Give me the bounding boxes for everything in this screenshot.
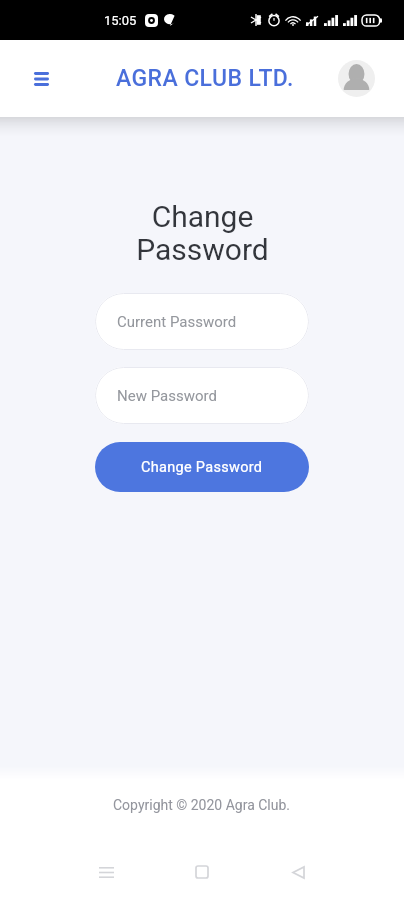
- button[interactable]: New Password: [95, 367, 309, 424]
- staticText: 15:05: [104, 13, 137, 28]
- button[interactable]: Home: [178, 848, 226, 896]
- staticText: Change Password: [136, 199, 269, 267]
- button[interactable]: Recent apps: [82, 848, 130, 896]
- button[interactable]: Change Password: [95, 442, 309, 492]
- button[interactable]: Current Password: [95, 293, 309, 350]
- staticText: Change Password: [141, 459, 263, 476]
- staticText: Current Password: [117, 313, 237, 331]
- button[interactable]: Back: [274, 848, 322, 896]
- staticText: New Password: [117, 387, 217, 405]
- button[interactable]: Profile: [338, 60, 375, 97]
- staticText: AGRA CLUB LTD.: [116, 65, 294, 92]
- button[interactable]: Open navigation menu: [19, 57, 63, 101]
- staticText: Copyright © 2020 Agra Club.: [113, 797, 291, 813]
